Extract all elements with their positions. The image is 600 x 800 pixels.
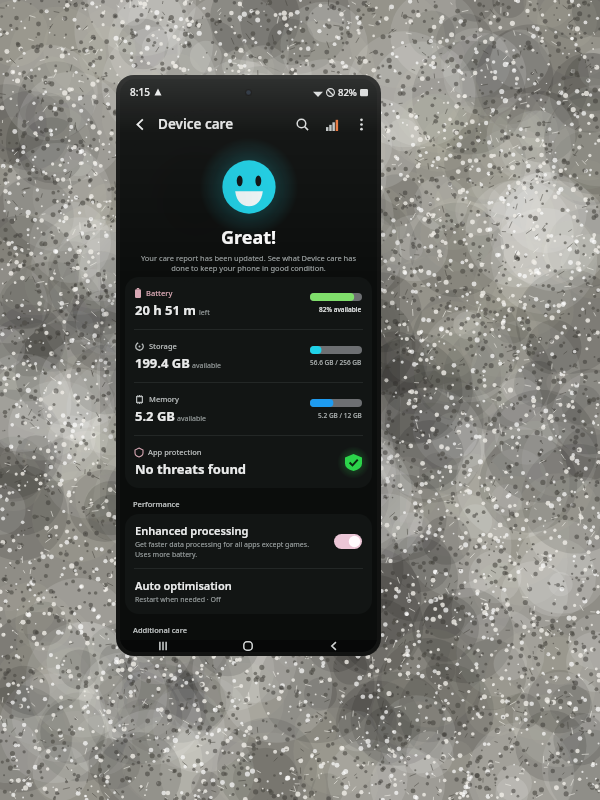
button[interactable]: Battery [125, 277, 372, 329]
button[interactable]: Enhanced processing [125, 514, 372, 568]
staticText: App protection [148, 447, 202, 457]
button[interactable]: App protection [125, 436, 372, 488]
staticText: Storage [149, 341, 177, 351]
staticText: Battery [146, 288, 173, 298]
staticText: available [192, 361, 222, 371]
staticText: 82% [338, 86, 357, 99]
button[interactable]: Memory [125, 383, 372, 435]
button[interactable]: Home [205, 640, 291, 652]
button[interactable]: Back [124, 108, 156, 140]
staticText: Memory [149, 394, 180, 404]
staticText: No threats found [135, 460, 247, 478]
button[interactable]: Recent apps [120, 640, 205, 652]
staticText: 5.2 GB / 12 GB [318, 411, 362, 420]
staticText: 20 h 51 m [135, 301, 197, 319]
button[interactable]: Usage statistics [317, 109, 347, 139]
staticText: Restart when needed · Off [135, 595, 221, 605]
button[interactable]: Auto optimisation [125, 569, 372, 614]
button[interactable]: Back [291, 640, 377, 652]
staticText: 8:15 [130, 85, 150, 99]
staticText: 82% available [319, 305, 362, 314]
staticText: available [177, 414, 207, 424]
button[interactable]: Storage [125, 330, 372, 382]
staticText: left [199, 308, 210, 318]
button[interactable]: Enhanced processing toggle [334, 534, 362, 549]
button[interactable]: Search [287, 109, 317, 139]
staticText: Device care [158, 115, 234, 133]
staticText: 56.6 GB / 256 GB [310, 358, 362, 367]
button[interactable]: More options [347, 109, 375, 139]
staticText: 199.4 GB [135, 354, 190, 372]
staticText: 5.2 GB [135, 407, 175, 425]
staticText: Enhanced processing [135, 523, 249, 538]
staticText: Get faster data processing for all apps … [135, 540, 326, 559]
staticText: Performance [133, 499, 180, 509]
staticText: Your care report has been updated. See w… [136, 253, 361, 273]
staticText: Additional care [133, 625, 187, 635]
staticText: Great! [221, 225, 277, 250]
staticText: Auto optimisation [135, 578, 232, 593]
